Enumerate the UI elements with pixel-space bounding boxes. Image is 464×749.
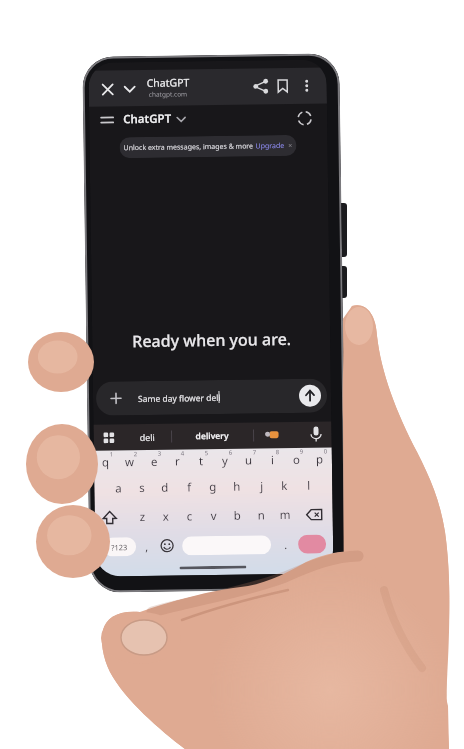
button[interactable]: ?123 <box>103 537 136 557</box>
button[interactable]: z <box>135 508 151 526</box>
staticText: b <box>234 508 242 524</box>
button[interactable]: v <box>206 507 222 525</box>
button[interactable]: delivery <box>181 425 244 447</box>
staticText: r <box>175 453 180 470</box>
staticText: a <box>115 480 122 496</box>
button[interactable]: deli <box>127 426 168 448</box>
staticText: Upgrade <box>255 141 285 151</box>
button[interactable] <box>182 535 271 555</box>
staticText: 0 <box>324 447 328 455</box>
staticText: t <box>199 453 204 469</box>
staticText: 8 <box>276 448 280 456</box>
staticText: v <box>211 508 217 524</box>
staticText: z <box>140 509 146 525</box>
staticText: ChatGPT <box>146 75 190 90</box>
button[interactable]: b <box>230 507 246 525</box>
button[interactable]: u <box>241 451 257 470</box>
staticText: i <box>271 452 274 468</box>
staticText: c <box>187 508 193 524</box>
button[interactable]: k <box>276 477 292 495</box>
staticText: d <box>161 480 169 496</box>
staticText: x <box>163 509 170 525</box>
button[interactable]: Same day flower deli <box>96 378 327 416</box>
button[interactable]: y <box>217 452 233 470</box>
button[interactable]: l <box>300 477 316 495</box>
staticText: 4 <box>181 449 185 457</box>
staticText: o <box>293 452 300 468</box>
button[interactable]: x <box>158 508 174 526</box>
staticText: u <box>245 452 253 469</box>
button[interactable]: n <box>254 506 270 524</box>
staticText: n <box>258 507 266 523</box>
staticText: ?123 <box>111 542 128 552</box>
staticText: p <box>316 451 324 468</box>
button[interactable]: m <box>277 506 293 524</box>
button[interactable]: s <box>134 479 150 497</box>
staticText: 2 <box>134 450 138 458</box>
staticText: 1 <box>110 450 114 458</box>
staticText: s <box>139 480 145 496</box>
button[interactable]: t <box>193 452 209 470</box>
button[interactable]: a <box>110 479 126 497</box>
button[interactable]: p <box>312 450 328 469</box>
button[interactable]: h <box>229 478 245 496</box>
staticText: . <box>284 537 287 552</box>
staticText: j <box>260 478 263 494</box>
button[interactable]: Unlock extra messages, images & more <box>119 135 297 158</box>
button[interactable] <box>298 534 326 554</box>
staticText: deli <box>139 431 156 443</box>
staticText: g <box>209 479 217 495</box>
staticText: l <box>307 478 310 494</box>
staticText: Same day flower deli <box>138 392 221 405</box>
staticText: f <box>187 479 191 495</box>
staticText: × <box>284 141 293 151</box>
staticText: Unlock extra messages, images & more <box>123 141 256 153</box>
staticText: ChatGPT <box>123 111 172 127</box>
staticText: w <box>125 454 135 470</box>
button[interactable]: r <box>169 452 185 471</box>
button[interactable]: o <box>288 451 304 469</box>
button[interactable]: e <box>146 453 162 471</box>
staticText: e <box>151 454 158 470</box>
button[interactable]: c <box>182 507 198 525</box>
staticText: 7 <box>253 448 257 456</box>
staticText: , <box>145 539 148 554</box>
staticText: 5 <box>205 449 209 457</box>
staticText: h <box>233 479 241 495</box>
button[interactable]: g <box>205 478 221 496</box>
button[interactable]: d <box>157 479 173 497</box>
staticText: 9 <box>300 448 304 456</box>
staticText: k <box>281 478 288 494</box>
staticText: q <box>102 454 110 471</box>
button[interactable]: j <box>253 477 269 495</box>
button[interactable]: i <box>264 451 280 469</box>
staticText: y <box>222 453 228 469</box>
button[interactable]: f <box>181 478 197 496</box>
staticText: Ready when you are. <box>132 328 291 352</box>
button[interactable]: q <box>98 453 114 472</box>
button[interactable]: w <box>122 453 138 471</box>
staticText: delivery <box>195 430 230 442</box>
staticText: chatgpt.com <box>149 89 188 99</box>
staticText: 3 <box>158 450 162 458</box>
staticText: 6 <box>229 449 233 457</box>
staticText: m <box>280 507 291 523</box>
